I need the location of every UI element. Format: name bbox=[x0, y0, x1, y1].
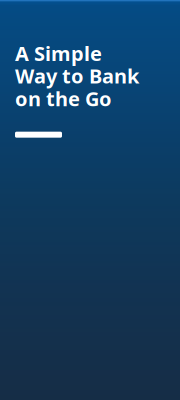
staticText: A Simple Way to Bank on the Go bbox=[15, 40, 139, 112]
